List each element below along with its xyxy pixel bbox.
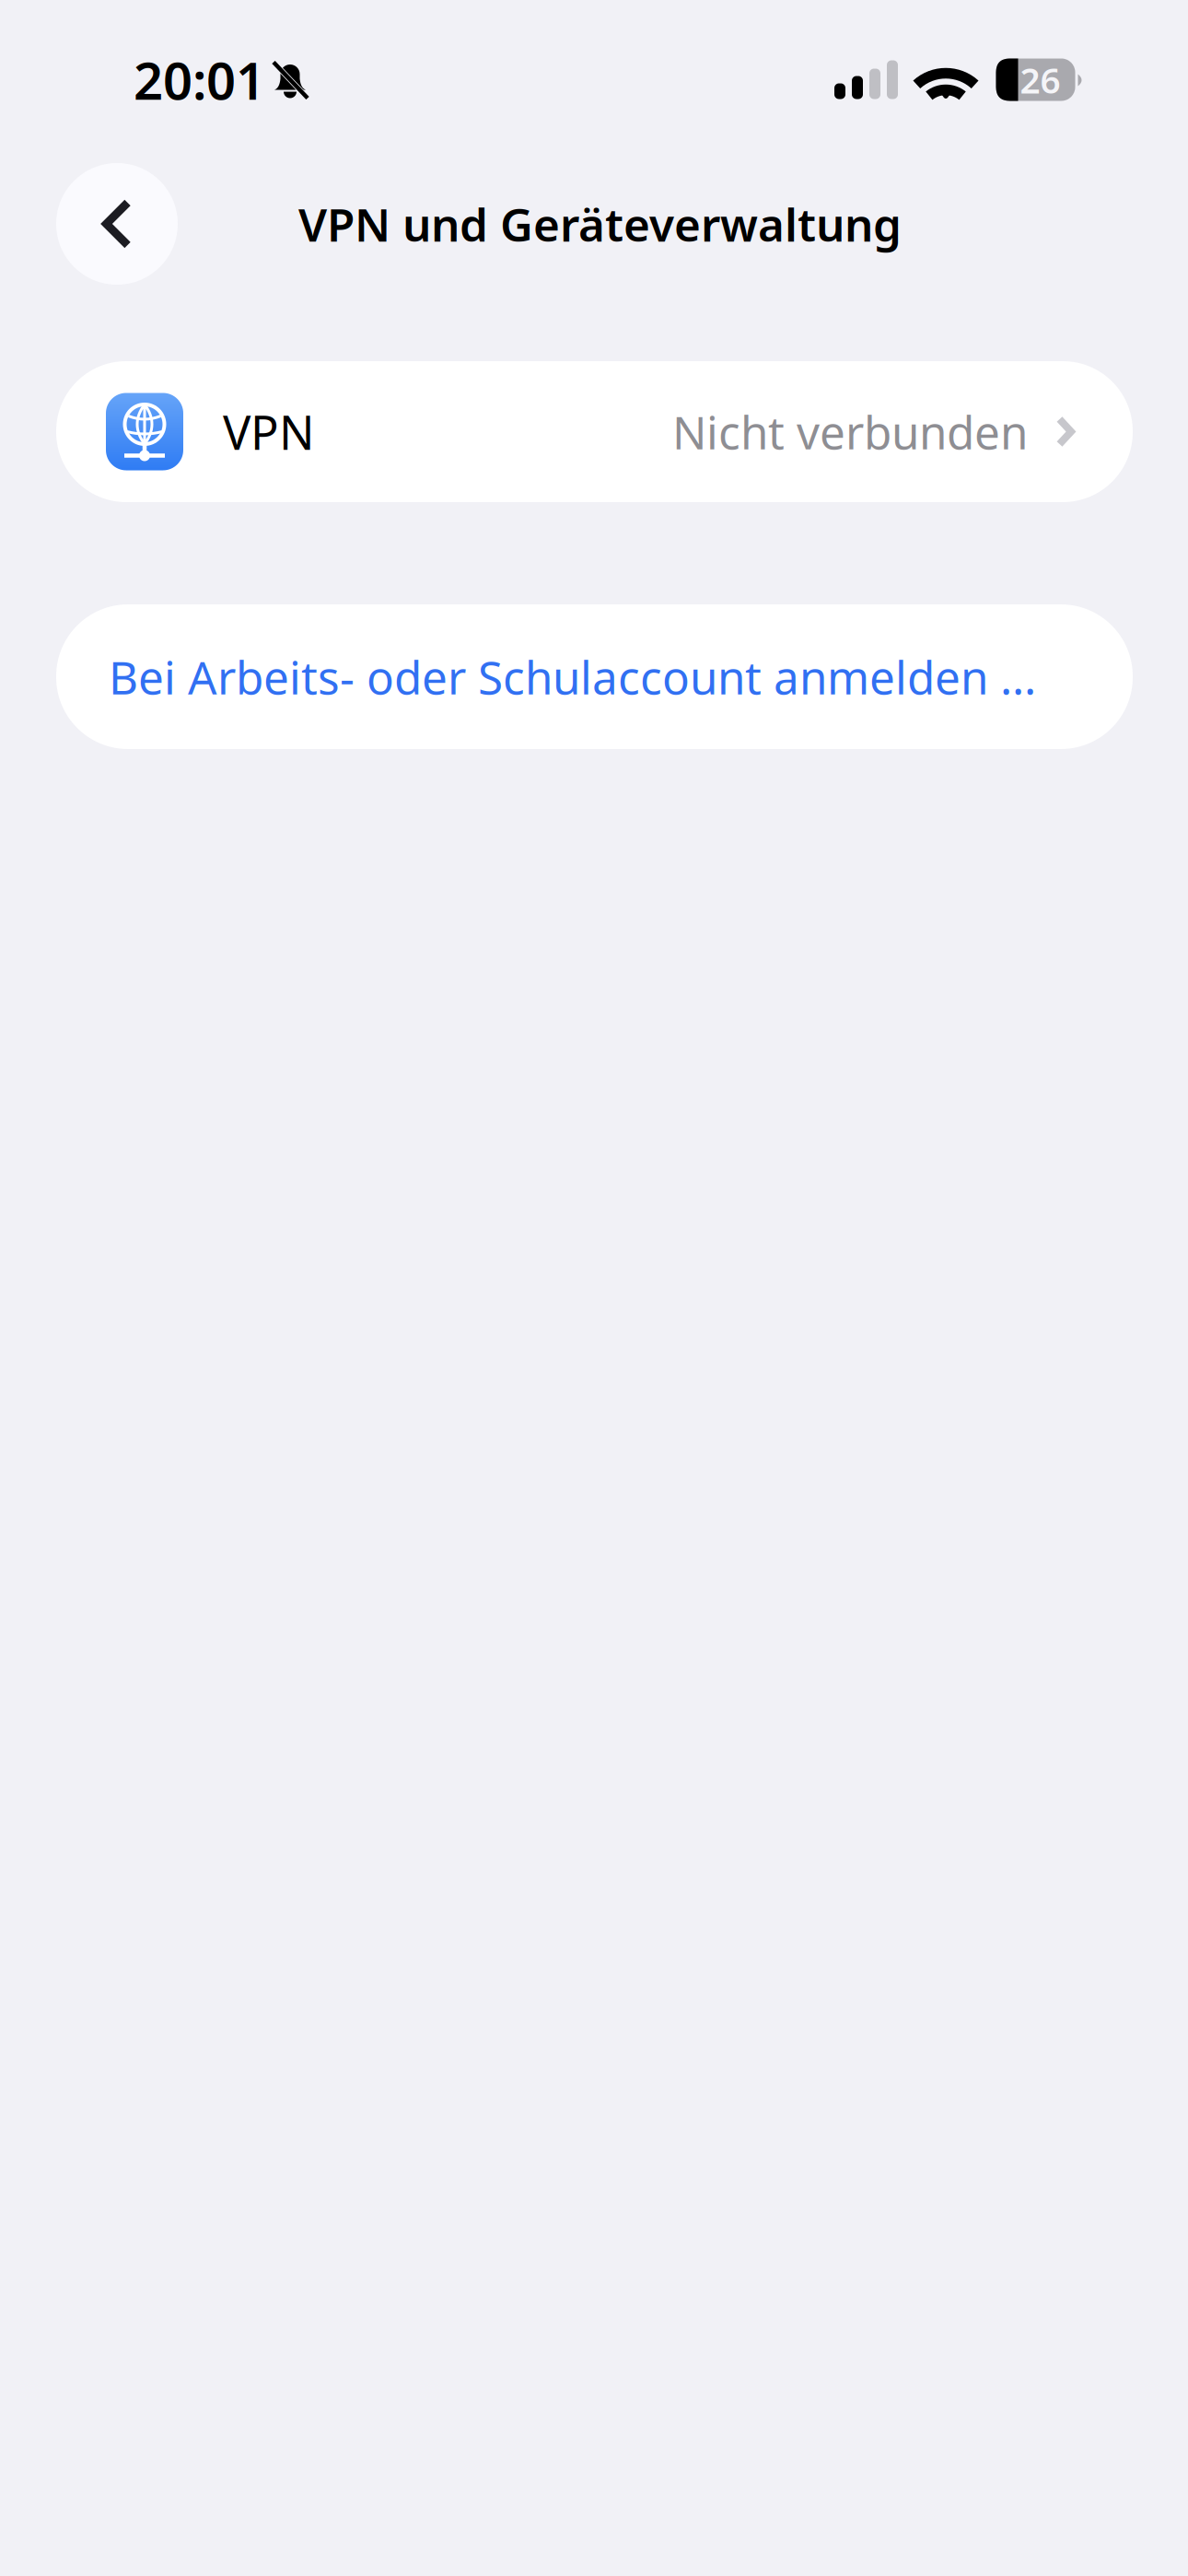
staticText: 20:01 xyxy=(134,45,265,114)
staticText: VPN und Geräteverwaltung xyxy=(298,194,902,254)
staticText: 26 xyxy=(1020,56,1060,103)
staticText: Nicht verbunden xyxy=(672,401,1028,462)
button[interactable]: VPN xyxy=(56,361,1133,502)
staticText: VPN xyxy=(223,401,315,463)
staticText: Bei Arbeits- oder Schulaccount anmelden … xyxy=(109,646,1036,707)
button[interactable]: Back xyxy=(56,163,178,285)
button[interactable]: Bei Arbeits- oder Schulaccount anmelden … xyxy=(56,604,1133,749)
